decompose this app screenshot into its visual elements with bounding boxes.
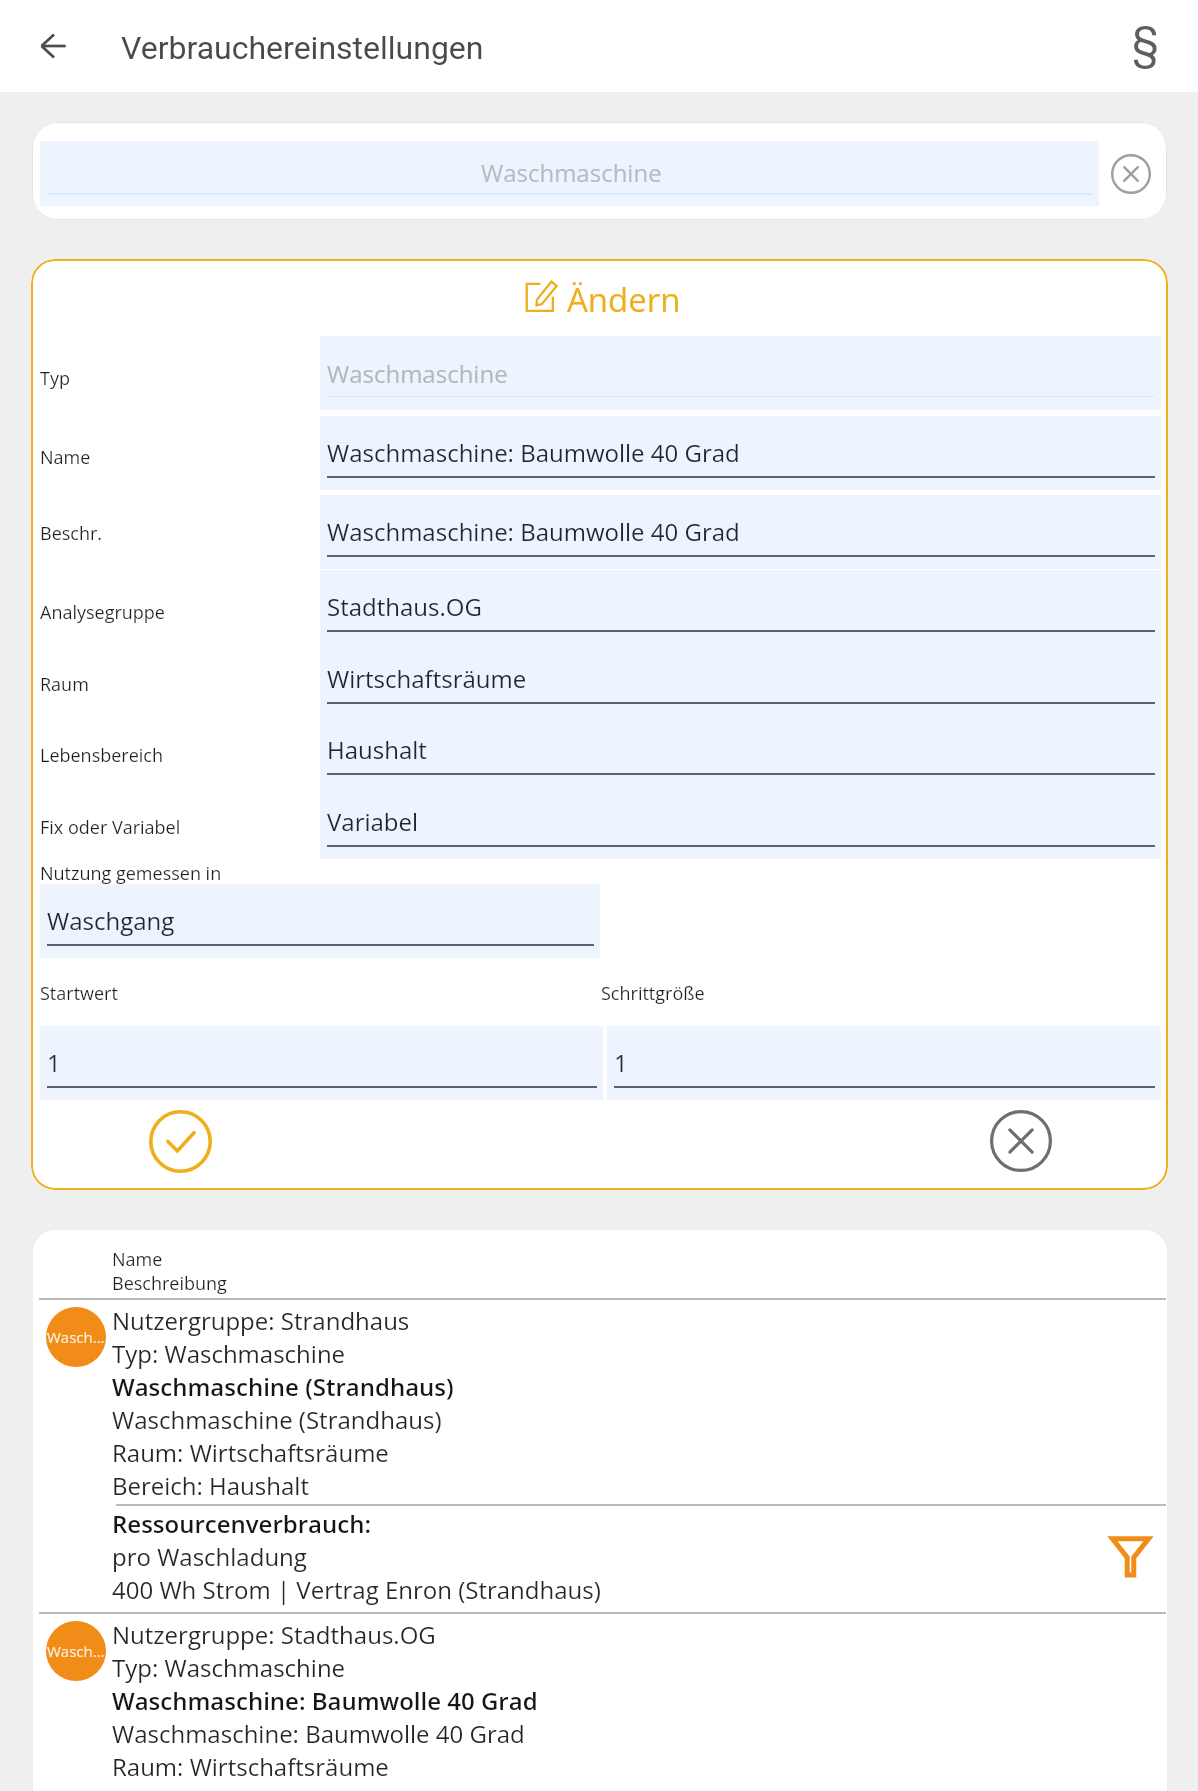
- button[interactable]: Confirm: [144, 1105, 216, 1177]
- staticText: Wirtschaftsräume: [327, 662, 527, 695]
- staticText: 1: [614, 1046, 628, 1079]
- staticText: Waschmaschine (Strandhaus): [112, 1403, 442, 1436]
- staticText: Raum: Wirtschaftsräume: [112, 1436, 389, 1469]
- staticText: Typ: [40, 366, 70, 391]
- staticText: Beschr.: [40, 521, 103, 546]
- staticText: Ändern: [567, 277, 681, 322]
- button[interactable]: [33, 1614, 1167, 1791]
- staticText: Bereich: Haushalt: [112, 1469, 309, 1502]
- staticText: Stadthaus.OG: [327, 590, 482, 623]
- button[interactable]: Variabel: [320, 785, 1161, 859]
- staticText: Fix oder Variabel: [40, 815, 181, 840]
- staticText: Startwert: [40, 981, 118, 1006]
- staticText: Lebensbereich: [40, 743, 164, 768]
- staticText: Wasch...: [47, 1327, 105, 1347]
- staticText: Nutzergruppe: Strandhaus: [112, 1304, 410, 1337]
- staticText: Analysegruppe: [40, 600, 165, 625]
- button[interactable]: Clear search: [1110, 153, 1152, 195]
- button[interactable]: Waschmaschine: [40, 141, 1099, 206]
- button[interactable]: Waschmaschine: Baumwolle 40 Grad: [320, 495, 1161, 569]
- staticText: Nutzung gemessen in: [40, 861, 222, 886]
- staticText: §: [1132, 17, 1159, 69]
- staticText: Waschgang: [47, 904, 175, 937]
- staticText: Ressourcenverbrauch:: [112, 1507, 371, 1540]
- staticText: Name: [40, 445, 91, 470]
- button[interactable]: Waschmaschine: [320, 336, 1161, 410]
- staticText: 400 Wh Strom | Vertrag Enron (Strandhaus…: [112, 1573, 601, 1606]
- staticText: Nutzergruppe: Stadthaus.OG: [112, 1618, 436, 1651]
- button[interactable]: Stadthaus.OG: [320, 570, 1161, 644]
- button[interactable]: Cancel: [985, 1105, 1057, 1177]
- staticText: Beschreibung: [112, 1271, 227, 1296]
- staticText: Variabel: [327, 805, 419, 838]
- staticText: Waschmaschine: [327, 357, 508, 390]
- staticText: Wasch...: [47, 1641, 105, 1661]
- button[interactable]: Haushalt: [320, 713, 1161, 787]
- staticText: Waschmaschine: Baumwolle 40 Grad: [327, 436, 740, 469]
- button[interactable]: Waschgang: [40, 884, 600, 958]
- staticText: 1: [47, 1046, 61, 1079]
- staticText: Raum: [40, 672, 89, 697]
- staticText: Verbrauchereinstellungen: [121, 29, 484, 67]
- staticText: Waschmaschine: Baumwolle 40 Grad: [112, 1684, 538, 1717]
- staticText: Haushalt: [327, 733, 427, 766]
- button[interactable]: Ändern: [519, 274, 689, 320]
- staticText: Typ: Waschmaschine: [112, 1337, 346, 1370]
- button[interactable]: Back: [23, 16, 83, 76]
- button[interactable]: Filter: [1102, 1528, 1159, 1585]
- staticText: pro Waschladung: [112, 1540, 307, 1573]
- staticText: Typ: Waschmaschine: [112, 1651, 346, 1684]
- staticText: Schrittgröße: [601, 981, 705, 1006]
- staticText: Waschmaschine (Strandhaus): [112, 1370, 454, 1403]
- button[interactable]: Legal notice: [1113, 11, 1177, 75]
- staticText: Waschmaschine: [481, 156, 662, 189]
- button[interactable]: [33, 1300, 1167, 1610]
- staticText: Raum: Wirtschaftsräume: [112, 1750, 389, 1783]
- button[interactable]: 1: [607, 1026, 1161, 1100]
- button[interactable]: Wirtschaftsräume: [320, 642, 1161, 716]
- staticText: Waschmaschine: Baumwolle 40 Grad: [112, 1717, 525, 1750]
- staticText: Name: [112, 1247, 163, 1272]
- button[interactable]: 1: [40, 1026, 603, 1100]
- button[interactable]: Waschmaschine: Baumwolle 40 Grad: [320, 416, 1161, 490]
- staticText: Waschmaschine: Baumwolle 40 Grad: [327, 515, 740, 548]
